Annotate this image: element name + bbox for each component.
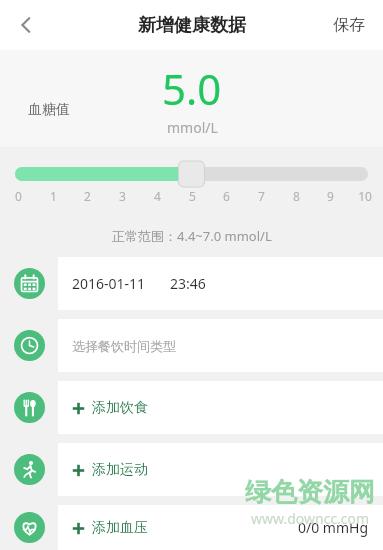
staticText: 0/0 mmHg	[298, 518, 369, 537]
staticText: 2016-01-11	[72, 274, 146, 293]
staticText: 5.0	[162, 60, 222, 117]
staticText: 4	[154, 188, 161, 204]
staticText: 添加运动	[92, 461, 148, 479]
staticText: 10	[358, 188, 372, 204]
button[interactable]: Back	[0, 0, 52, 50]
staticText: 选择餐饮时间类型	[72, 338, 176, 354]
staticText: 2	[84, 188, 91, 204]
button[interactable]: 保存	[315, 0, 383, 50]
staticText: 23:46	[170, 274, 206, 293]
staticText: 8	[293, 188, 300, 204]
staticText: mmol/L	[167, 118, 218, 137]
button[interactable]: 添加运动	[0, 443, 383, 496]
button[interactable]: 添加血压	[0, 505, 383, 550]
staticText: 3	[119, 188, 126, 204]
staticText: www.downcc.com	[251, 509, 370, 528]
button[interactable]: 2016-01-11	[0, 257, 383, 310]
staticText: 1	[50, 188, 57, 204]
staticText: 0	[15, 188, 22, 204]
staticText: 5	[189, 188, 196, 204]
staticText: 正常范围：4.4~7.0 mmol/L	[112, 227, 272, 245]
staticText: 6	[223, 188, 230, 204]
staticText: 血糖值	[28, 101, 70, 119]
staticText: 绿色资源网	[245, 476, 375, 509]
button[interactable]: Blood glucose slider	[0, 160, 383, 188]
button[interactable]: 添加饮食	[0, 381, 383, 434]
button[interactable]: 选择餐饮时间类型	[0, 319, 383, 372]
staticText: 9	[327, 188, 334, 204]
staticText: 添加血压	[92, 519, 148, 537]
staticText: 保存	[333, 15, 365, 35]
staticText: 添加饮食	[92, 399, 148, 417]
staticText: 7	[258, 188, 265, 204]
staticText: 新增健康数据	[138, 14, 246, 37]
